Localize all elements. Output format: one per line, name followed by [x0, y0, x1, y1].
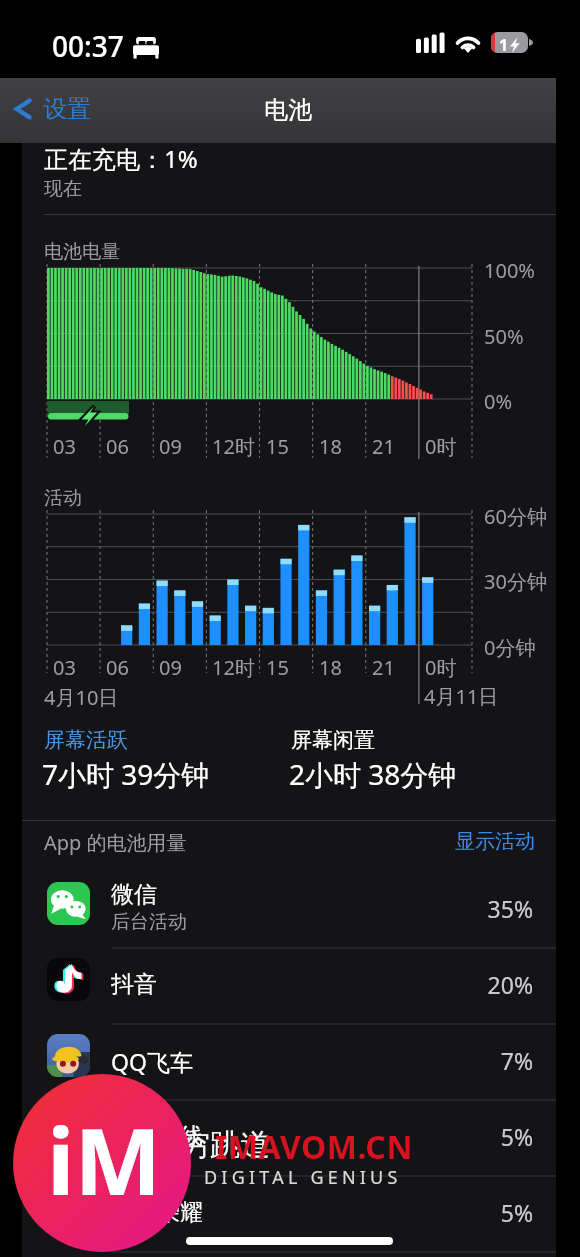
- staticText: 18: [319, 433, 342, 460]
- staticText: 00:37: [52, 27, 124, 65]
- staticText: 21: [372, 433, 395, 460]
- staticText: 20%: [437, 969, 533, 1000]
- staticText: 09: [159, 433, 182, 460]
- staticText: 屏幕闲置: [291, 727, 375, 753]
- staticText: 显示活动: [455, 829, 535, 854]
- staticText: 12时: [212, 433, 255, 460]
- staticText: DIGITAL GENIUS: [204, 1165, 402, 1190]
- staticText: 30分钟: [484, 568, 547, 595]
- staticText: 06: [106, 433, 129, 460]
- staticText: 后台活动: [111, 910, 187, 934]
- staticText: 理穷跳道: [150, 1126, 270, 1164]
- staticText: 7小时 39分钟: [42, 755, 210, 793]
- staticText: 06: [106, 654, 129, 681]
- staticText: 电池电量: [44, 240, 120, 264]
- staticText: 4月11日: [424, 683, 499, 710]
- button[interactable]: 显示活动: [455, 829, 535, 854]
- staticText: 5%: [437, 1197, 533, 1228]
- other: Back: [12, 94, 34, 124]
- staticText: 1: [499, 34, 509, 55]
- staticText: 0分钟: [484, 634, 536, 661]
- staticText: 0时: [425, 433, 457, 460]
- staticText: 抖音: [111, 970, 157, 999]
- staticText: 7%: [437, 1045, 533, 1076]
- staticText: 2小时 38分钟: [289, 755, 457, 793]
- staticText: 电池: [264, 95, 312, 125]
- staticText: 03: [53, 654, 76, 681]
- staticText: 0%: [484, 388, 513, 415]
- staticText: IMAVOM.CN: [215, 1125, 413, 1169]
- staticText: 正在充电：1%: [44, 142, 198, 175]
- staticText: iM: [47, 1097, 162, 1222]
- staticText: 屏幕活跃: [44, 727, 128, 753]
- staticText: 设置: [43, 94, 91, 124]
- button[interactable]: QQ飞车: [22, 1024, 556, 1100]
- button[interactable]: 穿越火线: [22, 1100, 556, 1176]
- staticText: 微信: [111, 880, 157, 909]
- staticText: 12时: [212, 654, 255, 681]
- button[interactable]: 微信: [22, 872, 556, 948]
- button[interactable]: Back: [8, 92, 95, 126]
- staticText: 60分钟: [484, 503, 547, 530]
- staticText: 09: [159, 654, 182, 681]
- staticText: 5%: [437, 1121, 533, 1152]
- staticText: 现在: [44, 177, 82, 201]
- staticText: App 的电池用量: [44, 829, 187, 856]
- staticText: 50%: [484, 323, 524, 350]
- staticText: 100%: [484, 257, 535, 284]
- button[interactable]: 王者荣耀: [22, 1176, 556, 1252]
- staticText: 21: [372, 654, 395, 681]
- staticText: 35%: [437, 893, 533, 924]
- staticText: 15: [266, 654, 289, 681]
- staticText: 王者荣耀: [111, 1198, 203, 1227]
- staticText: QQ飞车: [111, 1046, 193, 1077]
- staticText: 03: [53, 433, 76, 460]
- button[interactable]: 抖音: [22, 948, 556, 1024]
- staticText: 15: [266, 433, 289, 460]
- staticText: 4月10日: [44, 684, 119, 711]
- staticText: 穿越火线: [111, 1122, 203, 1151]
- staticText: 18: [319, 654, 342, 681]
- staticText: 活动: [44, 486, 82, 510]
- staticText: 0时: [425, 654, 457, 681]
